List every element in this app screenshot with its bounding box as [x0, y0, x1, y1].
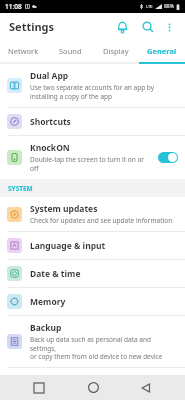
button[interactable]: Sound — [47, 40, 93, 62]
staticText: LTE — [146, 4, 153, 9]
staticText: Settings — [9, 19, 55, 34]
staticText: Check for updates and see update informa… — [30, 216, 173, 225]
staticText: System updates — [30, 203, 98, 215]
staticText: Sound — [59, 46, 82, 56]
button[interactable]: Backup — [0, 316, 185, 367]
button[interactable]: Notifications — [111, 16, 133, 38]
staticText: Language & input — [30, 240, 106, 252]
staticText: Shortcuts — [30, 116, 71, 128]
button[interactable]: Display — [93, 40, 139, 62]
staticText: Dual App — [30, 70, 69, 82]
staticText: Use two separate accounts for an app by … — [30, 83, 155, 101]
staticText: SYSTEM — [8, 184, 33, 193]
button[interactable]: Dual App — [0, 64, 185, 107]
button[interactable]: Recents — [25, 375, 53, 400]
button[interactable]: Home — [79, 375, 107, 400]
staticText: Back up data such as personal data and s… — [30, 335, 178, 361]
button[interactable]: Shortcuts — [0, 108, 185, 135]
staticText: Backup — [30, 322, 62, 334]
staticText: 11:08 — [5, 2, 22, 11]
button[interactable]: General — [139, 40, 185, 62]
staticText: Date & time — [30, 268, 81, 280]
button: SYSTEM — [0, 179, 185, 197]
button[interactable]: More options — [159, 17, 179, 37]
button[interactable]: Search — [137, 16, 159, 38]
button[interactable]: Date & time — [0, 260, 185, 287]
staticText: Display — [103, 46, 129, 56]
button[interactable]: Memory — [0, 288, 185, 315]
button[interactable]: System updates — [0, 197, 185, 231]
button[interactable]: KnockON — [0, 136, 185, 179]
button[interactable]: Back — [132, 375, 160, 400]
staticText: KnockON — [30, 142, 70, 154]
button[interactable]: KnockON toggle — [158, 152, 178, 163]
staticText: Memory — [30, 296, 66, 308]
button[interactable]: Language & input — [0, 232, 185, 259]
button[interactable]: Network — [0, 40, 47, 62]
staticText: General — [147, 46, 177, 56]
staticText: 88% — [164, 3, 174, 10]
staticText: Network — [8, 46, 39, 56]
staticText: Double-tap the screen to turn it on or o… — [30, 155, 145, 173]
